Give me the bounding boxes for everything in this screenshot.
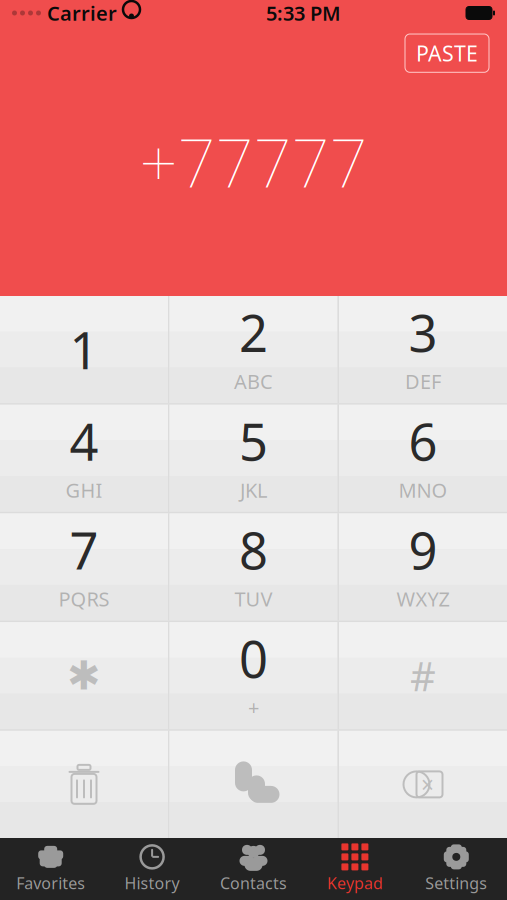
staticText: GHI (65, 477, 102, 503)
button[interactable]: # (339, 622, 507, 729)
staticText: 7 (69, 516, 98, 583)
staticText: History (125, 872, 180, 894)
button[interactable]: 5 (169, 405, 337, 512)
button[interactable]: 0 (169, 622, 337, 729)
staticText: 9 (408, 516, 437, 583)
button[interactable]: Settings (406, 838, 507, 900)
staticText: Carrier (47, 0, 117, 26)
button[interactable]: Favorites (0, 838, 101, 900)
button[interactable]: 6 (339, 405, 507, 512)
staticText: MNO (398, 477, 447, 503)
staticText: PASTE (416, 39, 478, 67)
staticText: 5 (239, 407, 268, 475)
staticText: # (410, 649, 436, 702)
staticText: WXYZ (396, 585, 449, 612)
button[interactable]: History (101, 838, 203, 900)
staticText: 2 (239, 299, 268, 366)
staticText: 0 (239, 625, 268, 692)
button[interactable]: 2 (169, 296, 337, 403)
staticText: 5:33 PM (266, 0, 341, 26)
staticText: Favorites (16, 872, 85, 894)
button[interactable]: Call (169, 731, 337, 838)
staticText: JKL (240, 477, 267, 503)
button[interactable]: 1 (0, 296, 168, 403)
button[interactable]: ✱ (0, 622, 168, 729)
button[interactable]: 7 (0, 513, 168, 621)
staticText: 6 (408, 407, 437, 475)
button[interactable]: Backspace (339, 731, 507, 838)
button[interactable]: 8 (169, 513, 337, 621)
staticText: 1 (69, 316, 98, 383)
staticText: × (421, 769, 434, 799)
staticText: Contacts (220, 872, 287, 894)
staticText: Settings (425, 872, 487, 894)
staticText: ABC (234, 368, 273, 395)
staticText: 8 (239, 516, 268, 583)
button[interactable]: PASTE (405, 34, 489, 72)
button[interactable]: Contacts (203, 838, 304, 900)
staticText: TUV (234, 585, 272, 612)
button[interactable]: Delete all (0, 731, 168, 838)
staticText: ✱ (67, 653, 101, 698)
staticText: DEF (405, 368, 441, 395)
staticText: Keypad (327, 872, 383, 894)
button[interactable]: 4 (0, 405, 168, 512)
button[interactable]: Keypad (304, 838, 406, 900)
staticText: 4 (69, 407, 98, 475)
staticText: 3 (408, 299, 437, 366)
button[interactable]: 9 (339, 513, 507, 621)
staticText: +77777 (139, 117, 367, 206)
button[interactable]: 3 (339, 296, 507, 403)
staticText: PQRS (58, 585, 109, 612)
staticText: + (248, 694, 259, 721)
